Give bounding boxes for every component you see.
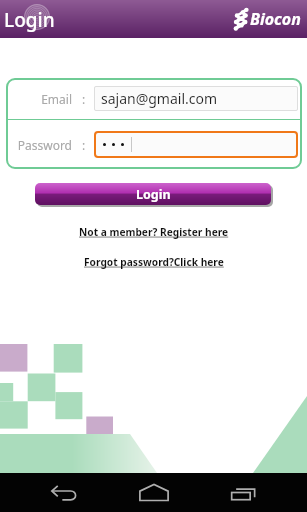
staticText: sajan@gmail.com xyxy=(101,89,218,108)
staticText: : xyxy=(82,91,86,107)
staticText: Login xyxy=(136,186,171,203)
staticText: Email xyxy=(6,91,72,107)
staticText: : xyxy=(82,137,86,153)
button[interactable]: Recent apps xyxy=(212,473,276,512)
staticText: Login xyxy=(4,7,55,33)
button[interactable]: Forgot password?Click here xyxy=(80,253,228,271)
button[interactable]: Back xyxy=(32,473,96,512)
staticText: Password xyxy=(6,137,72,153)
button[interactable]: Not a member? Register here xyxy=(75,223,233,241)
button[interactable]: sajan@gmail.com xyxy=(94,86,298,111)
staticText: Not a member? Register here xyxy=(79,225,229,239)
button[interactable]: Home xyxy=(122,473,186,512)
button[interactable] xyxy=(94,131,298,158)
button[interactable]: Login xyxy=(35,183,271,205)
staticText: Forgot password?Click here xyxy=(84,255,224,269)
staticText: Biocon xyxy=(250,8,301,30)
